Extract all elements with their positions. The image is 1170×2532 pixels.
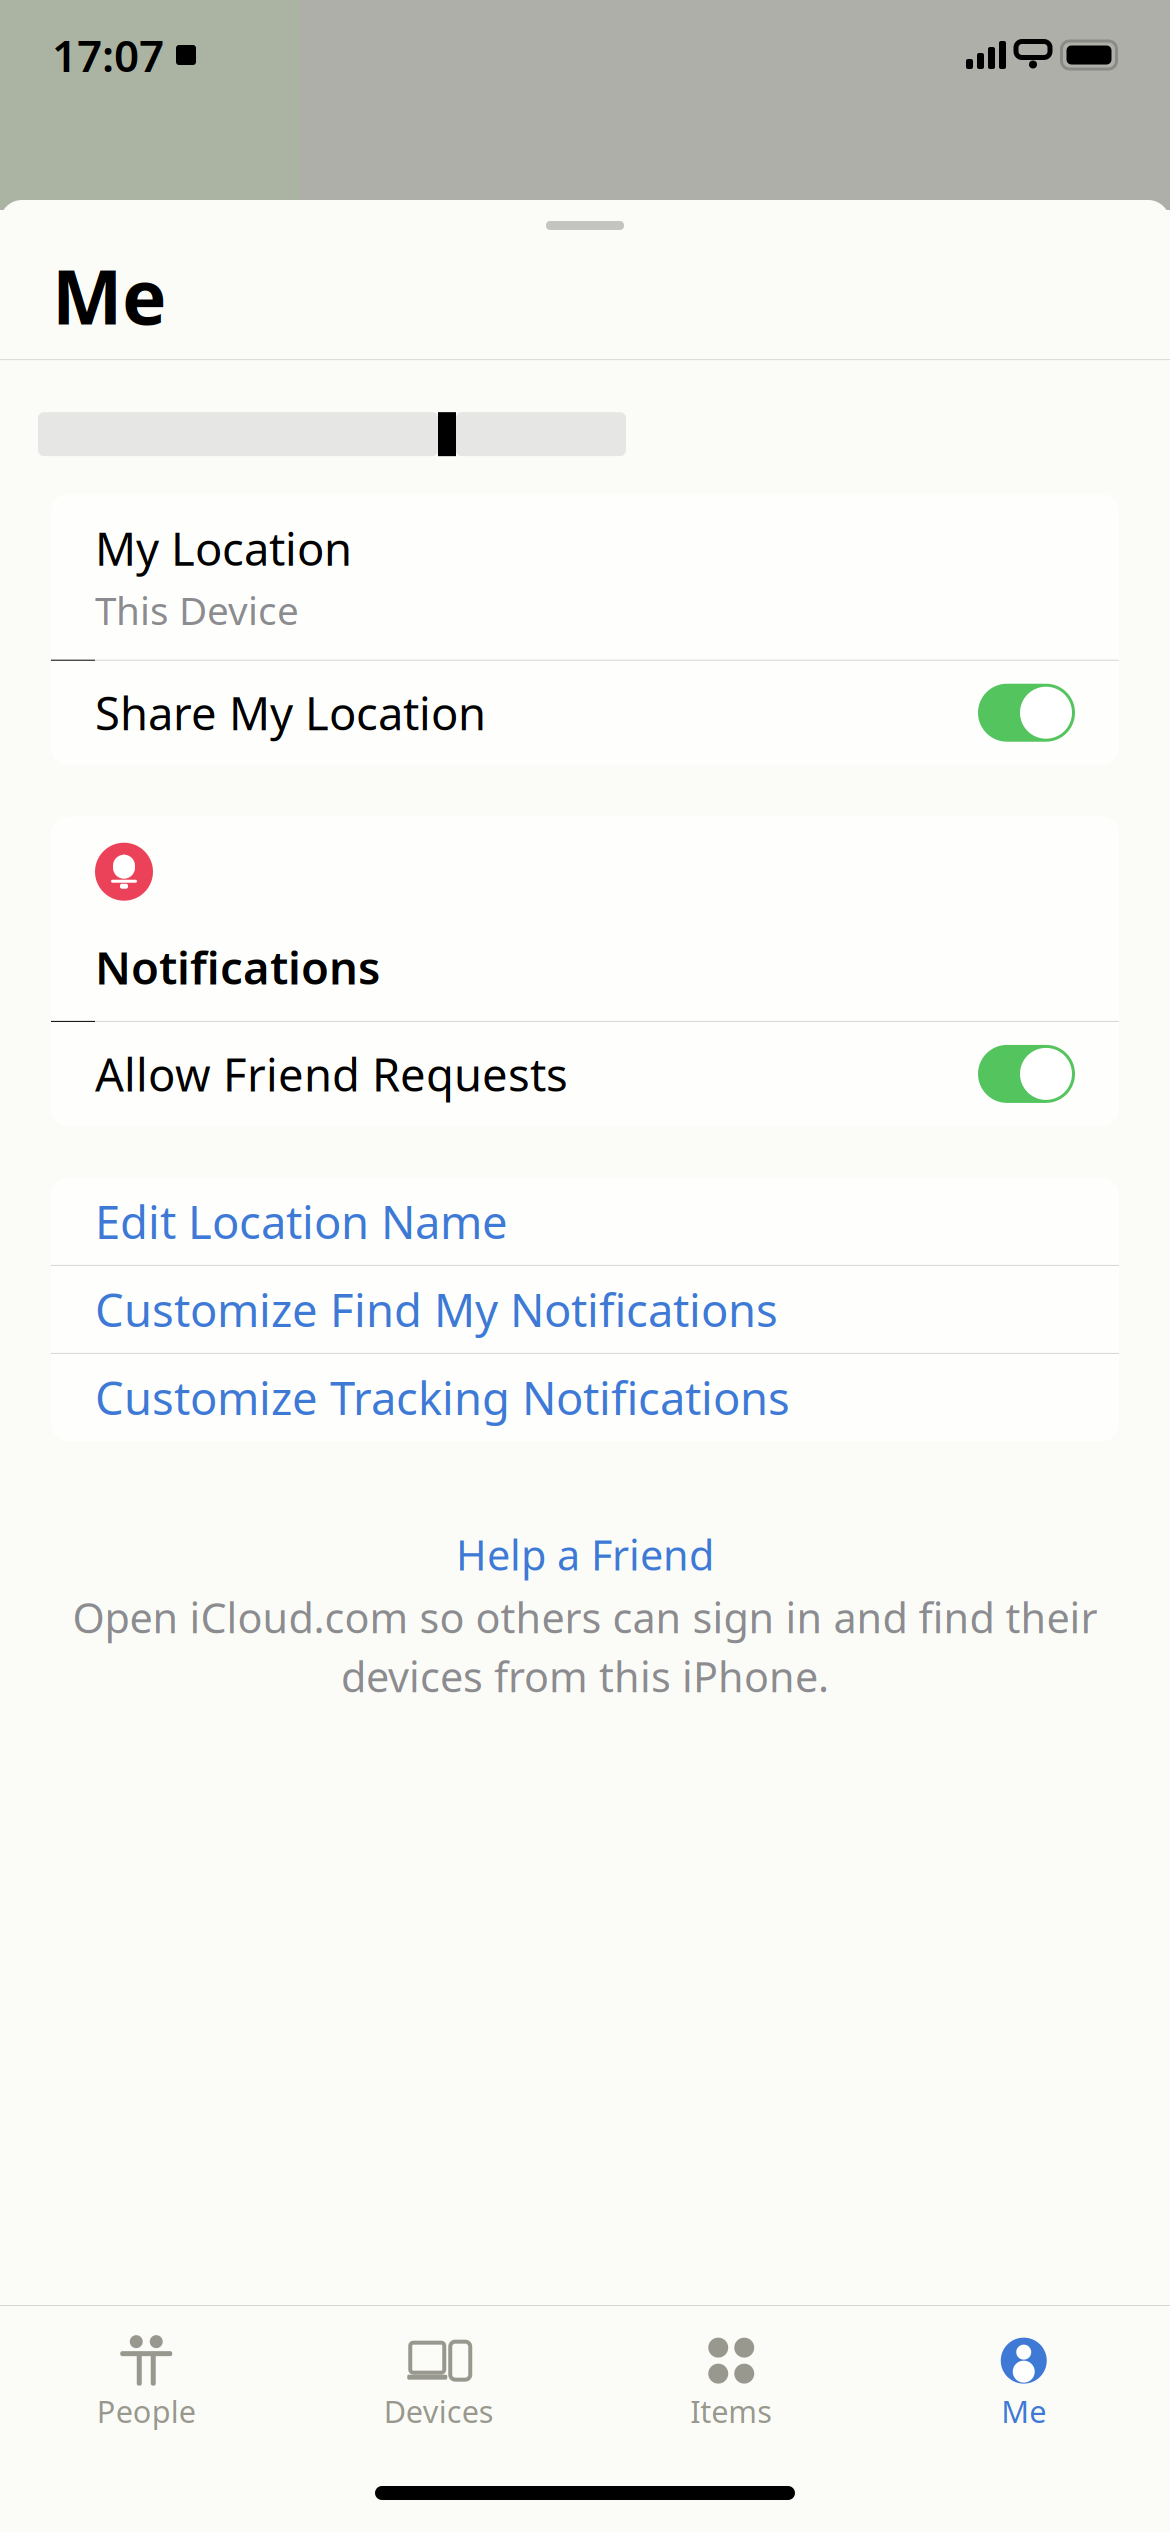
staticText: Notifications xyxy=(95,937,380,997)
staticText: People xyxy=(97,2391,196,2431)
button[interactable]: Customize Tracking Notifications xyxy=(51,1354,1119,1441)
staticText: devices from this iPhone. xyxy=(341,1649,829,1704)
staticText: Devices xyxy=(384,2391,494,2431)
staticText: Customize Find My Notifications xyxy=(95,1279,778,1339)
button[interactable]: People xyxy=(0,2323,292,2437)
staticText: Edit Location Name xyxy=(95,1191,508,1251)
button[interactable]: Help a Friend xyxy=(0,1441,1170,1590)
staticText: Me xyxy=(52,246,167,345)
staticText: Allow Friend Requests xyxy=(95,1044,568,1104)
button[interactable]: Notifications xyxy=(51,817,1119,1021)
button[interactable]: Customize Find My Notifications xyxy=(51,1266,1119,1353)
button[interactable]: Items xyxy=(585,2323,877,2437)
staticText: Open iCloud.com so others can sign in an… xyxy=(72,1590,1097,1645)
staticText: 17:07 xyxy=(52,26,164,84)
staticText: This Device xyxy=(95,584,299,636)
staticText: Customize Tracking Notifications xyxy=(95,1367,790,1427)
staticText: My Location xyxy=(95,518,352,578)
button[interactable]: Edit Location Name xyxy=(51,1178,1119,1265)
button[interactable]: Share My Location xyxy=(51,661,1119,765)
button[interactable]: My Location xyxy=(51,494,1119,660)
staticText: Share My Location xyxy=(95,683,486,743)
button[interactable]: Allow Friend Requests xyxy=(51,1022,1119,1126)
button[interactable]: Me xyxy=(877,2323,1170,2437)
button[interactable]: Devices xyxy=(292,2323,585,2437)
staticText: Items xyxy=(690,2391,772,2431)
staticText: Help a Friend xyxy=(456,1527,714,1582)
staticText: Me xyxy=(1001,2391,1046,2431)
